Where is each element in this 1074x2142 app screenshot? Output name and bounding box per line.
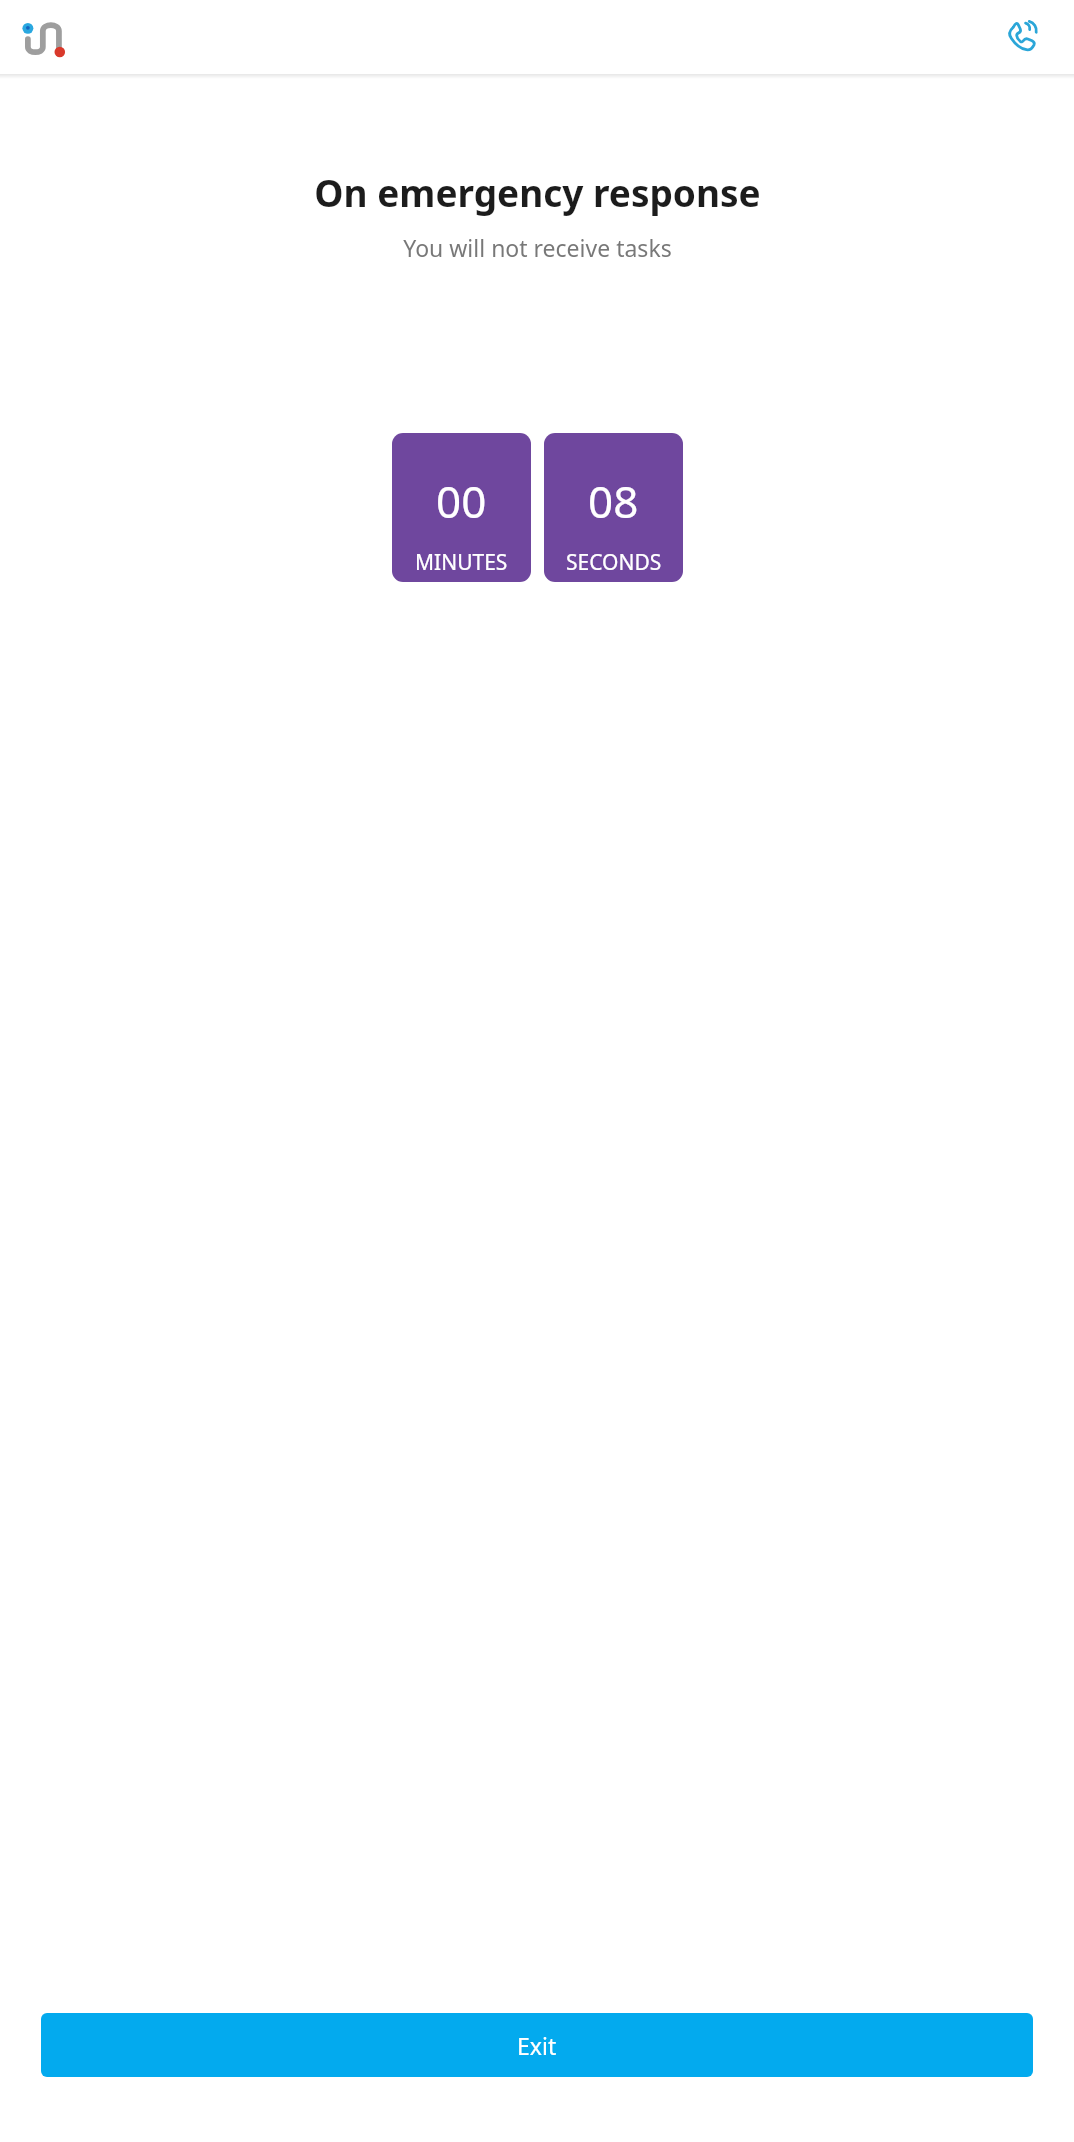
button[interactable]: 00 — [392, 433, 531, 582]
staticText: You will not receive tasks — [403, 232, 672, 263]
staticText: 08 — [588, 471, 639, 531]
staticText: MINUTES — [415, 548, 508, 577]
staticText: Exit — [517, 2030, 557, 2061]
button[interactable]: 08 — [544, 433, 683, 582]
staticText: On emergency response — [314, 167, 761, 217]
staticText: 00 — [436, 471, 487, 531]
staticText: SECONDS — [566, 548, 662, 577]
button[interactable]: Call — [996, 13, 1044, 61]
button[interactable]: Exit — [41, 2013, 1033, 2077]
